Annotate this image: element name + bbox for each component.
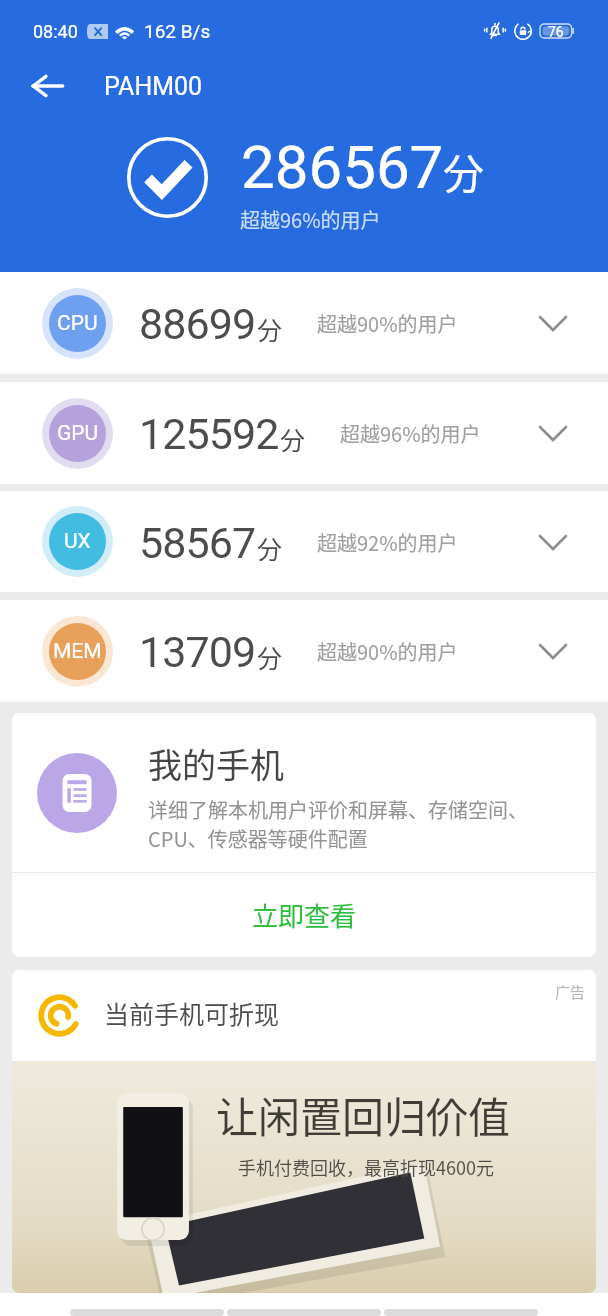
staticText: 58567 <box>139 518 256 568</box>
staticText: 分 <box>257 639 283 675</box>
button[interactable]: 当前手机可折现 <box>12 970 596 1061</box>
button[interactable]: Expand <box>529 409 577 457</box>
staticText: CPU <box>57 311 98 336</box>
staticText: 超越90%的用户 <box>317 637 458 666</box>
staticText: 分 <box>257 530 283 566</box>
staticText: 让闲置回归价值 <box>216 1084 511 1145</box>
staticText: 广告 <box>555 981 586 1003</box>
staticText: 162 B/s <box>144 20 211 42</box>
staticText: MEM <box>53 639 102 664</box>
button[interactable]: Expand <box>529 627 577 675</box>
staticText: 125592 <box>139 409 279 459</box>
staticText: 我的手机 <box>148 739 284 788</box>
staticText: 88699 <box>139 299 256 349</box>
staticText: 分 <box>280 421 306 457</box>
staticText: 超越96%的用户 <box>240 205 381 234</box>
button[interactable]: UX <box>0 491 608 592</box>
button[interactable]: CPU <box>0 272 608 374</box>
button[interactable]: MEM <box>0 600 608 702</box>
button[interactable]: 立即查看 <box>12 873 596 957</box>
staticText: 超越96%的用户 <box>340 419 481 448</box>
button[interactable]: Back <box>0 56 94 116</box>
button[interactable]: 让闲置回归价值 <box>12 1061 596 1293</box>
staticText: 超越90%的用户 <box>317 309 458 338</box>
button[interactable]: 我的手机 <box>12 713 596 872</box>
button[interactable]: Expand <box>529 299 577 347</box>
staticText: 76 <box>548 24 564 38</box>
staticText: 超越92%的用户 <box>317 528 458 557</box>
button[interactable]: Expand <box>529 518 577 566</box>
staticText: PAHM00 <box>104 72 203 101</box>
staticText: 手机付费回收，最高折现4600元 <box>238 1154 494 1180</box>
staticText: 当前手机可折现 <box>104 995 280 1031</box>
button[interactable]: GPU <box>0 382 608 484</box>
staticText: CPU、传感器等硬件配置 <box>148 824 368 853</box>
staticText: 13709 <box>139 627 256 677</box>
staticText: 分 <box>443 141 484 200</box>
staticText: 08:40 <box>33 21 78 42</box>
staticText: GPU <box>57 421 99 446</box>
staticText: 分 <box>257 311 283 347</box>
staticText: 286567 <box>241 132 444 202</box>
staticText: 立即查看 <box>252 896 357 934</box>
staticText: UX <box>64 529 91 554</box>
staticText: 详细了解本机用户评价和屏幕、存储空间、 <box>148 795 528 824</box>
